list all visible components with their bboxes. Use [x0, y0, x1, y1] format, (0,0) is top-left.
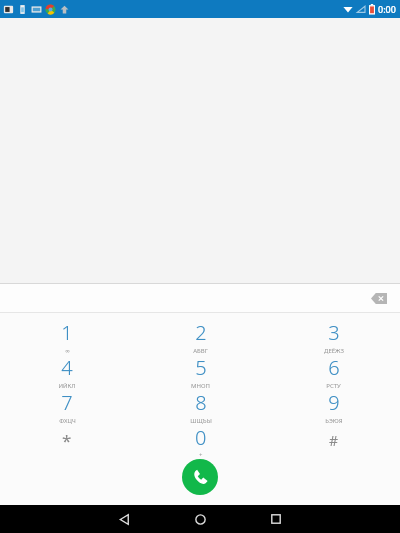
button[interactable]: Call	[182, 459, 218, 495]
staticText: 0	[195, 424, 207, 451]
button[interactable]: Backspace	[364, 284, 394, 312]
staticText: 7	[61, 389, 73, 416]
staticText: 0:00	[378, 3, 396, 15]
staticText: 5	[195, 354, 207, 381]
button[interactable]: Recents	[261, 505, 291, 533]
staticText: ИЙКЛ	[58, 382, 76, 389]
button[interactable]: 9	[267, 389, 400, 424]
button[interactable]: 2	[134, 319, 267, 354]
staticText: ∞	[65, 347, 70, 354]
button[interactable]: #	[267, 424, 400, 457]
button[interactable]: 3	[267, 319, 400, 354]
staticText: *	[62, 429, 72, 452]
staticText: ШЩЪЫ	[190, 417, 212, 424]
button[interactable]: Home	[185, 505, 215, 533]
button[interactable]: Back	[109, 505, 139, 533]
staticText: +	[199, 451, 203, 457]
button[interactable]: 5	[134, 354, 267, 389]
staticText: 8	[195, 389, 207, 416]
button[interactable]: 7	[0, 389, 134, 424]
button[interactable]: 1	[0, 319, 134, 354]
button[interactable]: 8	[134, 389, 267, 424]
button[interactable]: *	[0, 424, 134, 457]
staticText: ФХЦЧ	[59, 417, 76, 424]
staticText: 4	[61, 354, 73, 381]
staticText: #	[329, 431, 339, 450]
staticText: 3	[328, 319, 340, 346]
button[interactable]: 4	[0, 354, 134, 389]
staticText: РСТУ	[326, 382, 341, 389]
staticText: ЬЭЮЯ	[325, 417, 343, 424]
staticText: 1	[61, 319, 73, 346]
button[interactable]: 0	[134, 424, 267, 457]
staticText: АБВГ	[193, 347, 208, 354]
staticText: ДЕЁЖЗ	[324, 347, 344, 354]
button[interactable]: 6	[267, 354, 400, 389]
staticText: 2	[195, 319, 207, 346]
staticText: 9	[328, 389, 340, 416]
staticText: 6	[328, 354, 340, 381]
staticText: МНОП	[191, 382, 210, 389]
